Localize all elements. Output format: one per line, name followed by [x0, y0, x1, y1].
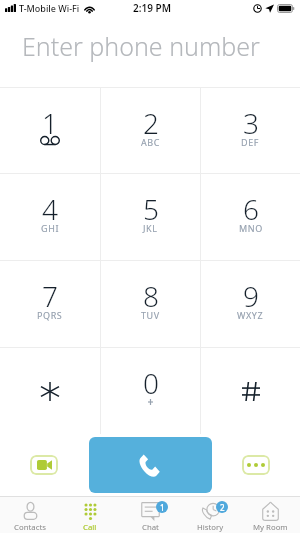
staticText: PQRS — [37, 309, 63, 321]
button[interactable] — [0, 348, 100, 434]
staticText: History — [197, 522, 224, 533]
button[interactable]: Call — [89, 437, 212, 493]
button[interactable]: 0 — [101, 348, 200, 434]
button[interactable]: 7 — [0, 261, 100, 347]
button[interactable] — [201, 348, 300, 434]
staticText: 2 — [220, 502, 225, 513]
staticText: 4 — [42, 190, 58, 228]
staticText: TUV — [141, 309, 160, 321]
staticText: WXYZ — [237, 309, 264, 321]
button[interactable]: Contacts — [0, 497, 60, 533]
staticText: MNO — [239, 222, 263, 234]
button[interactable]: 1 — [120, 497, 180, 533]
button[interactable]: 5 — [101, 174, 200, 260]
staticText: ABC — [141, 136, 161, 148]
staticText: Enter phone number — [22, 29, 260, 63]
staticText: DEF — [241, 136, 260, 148]
button[interactable]: 1 — [0, 88, 100, 173]
staticText: GHI — [41, 222, 60, 234]
staticText: Call — [83, 522, 97, 533]
button[interactable]: 2 — [101, 88, 200, 173]
staticText: 9 — [243, 277, 259, 315]
staticText: 2:19 PM — [133, 1, 171, 15]
staticText: My Room — [253, 522, 288, 533]
staticText: 1 — [160, 502, 165, 513]
button[interactable]: My Room — [240, 497, 300, 533]
button[interactable]: More options — [242, 455, 270, 475]
staticText: 7 — [42, 277, 58, 315]
button[interactable]: 8 — [101, 261, 200, 347]
button[interactable]: Enter phone number — [0, 20, 300, 87]
button[interactable]: 2 — [180, 497, 240, 533]
staticText: 6 — [243, 190, 259, 228]
staticText: Chat — [142, 522, 159, 533]
staticText: 2 — [143, 104, 159, 142]
staticText: 3 — [243, 104, 259, 142]
button[interactable]: Call — [60, 497, 120, 533]
staticText: JKL — [143, 222, 158, 234]
staticText: T-Mobile Wi-Fi — [19, 2, 80, 14]
staticText: 8 — [143, 277, 159, 315]
button[interactable]: 9 — [201, 261, 300, 347]
button[interactable]: 4 — [0, 174, 100, 260]
staticText: Contacts — [14, 522, 46, 533]
button[interactable]: Video call — [30, 455, 58, 475]
staticText: 0 — [143, 364, 159, 402]
button[interactable]: 6 — [201, 174, 300, 260]
button[interactable]: 3 — [201, 88, 300, 173]
staticText: 1 — [42, 104, 58, 142]
staticText: 5 — [143, 190, 159, 228]
